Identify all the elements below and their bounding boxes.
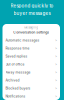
staticText: Automatic messages [5,38,39,42]
staticText: buyer messages [13,10,50,16]
staticText: Messaging [24,26,38,29]
button[interactable]: Notifications [2,92,60,100]
button[interactable]: Out of office [2,60,60,68]
staticText: Response time [5,46,29,50]
button[interactable]: Blocked buyers [2,84,60,92]
staticText: Respond quickly to [10,3,53,8]
button[interactable]: Archived [2,76,60,84]
staticText: Away message [5,70,30,74]
staticText: > [55,38,57,42]
staticText: > [55,70,57,74]
staticText: Notifications [5,94,25,98]
staticText: Archived [5,78,19,82]
staticText: Saved replies [5,54,27,58]
button[interactable]: Response time [2,44,60,52]
staticText: > [55,78,57,82]
staticText: Conversation settings [13,30,49,34]
staticText: > [55,46,57,50]
staticText: Out of office [5,62,24,66]
button[interactable]: Away message [2,68,60,76]
button[interactable]: Automatic messages [2,36,60,44]
button[interactable]: Saved replies [2,52,60,60]
staticText: > [55,54,57,58]
staticText: > [55,94,57,98]
staticText: > [55,86,57,90]
staticText: > [55,62,57,66]
staticText: Blocked buyers [5,86,30,90]
